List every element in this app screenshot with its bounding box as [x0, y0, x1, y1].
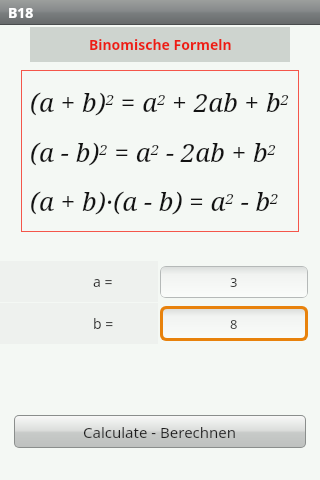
staticText: Calculate - Berechnen [83, 422, 237, 442]
staticText: Binomische Formeln [89, 35, 232, 54]
staticText: (a + b)·(a − b) = a2 − b2 [30, 183, 279, 218]
button[interactable]: 3 [161, 267, 307, 297]
staticText: (a − b)2 = a2 − 2ab + b2 [30, 134, 276, 169]
staticText: B18 [8, 3, 34, 22]
staticText: b = [93, 314, 114, 333]
staticText: a = [93, 272, 113, 291]
staticText: 8 [230, 315, 238, 333]
button[interactable]: 8 [163, 309, 305, 338]
button[interactable]: Calculate - Berechnen [15, 416, 305, 447]
staticText: 3 [230, 273, 238, 291]
staticText: (a + b)2 = a2 + 2ab + b2 [30, 84, 289, 119]
